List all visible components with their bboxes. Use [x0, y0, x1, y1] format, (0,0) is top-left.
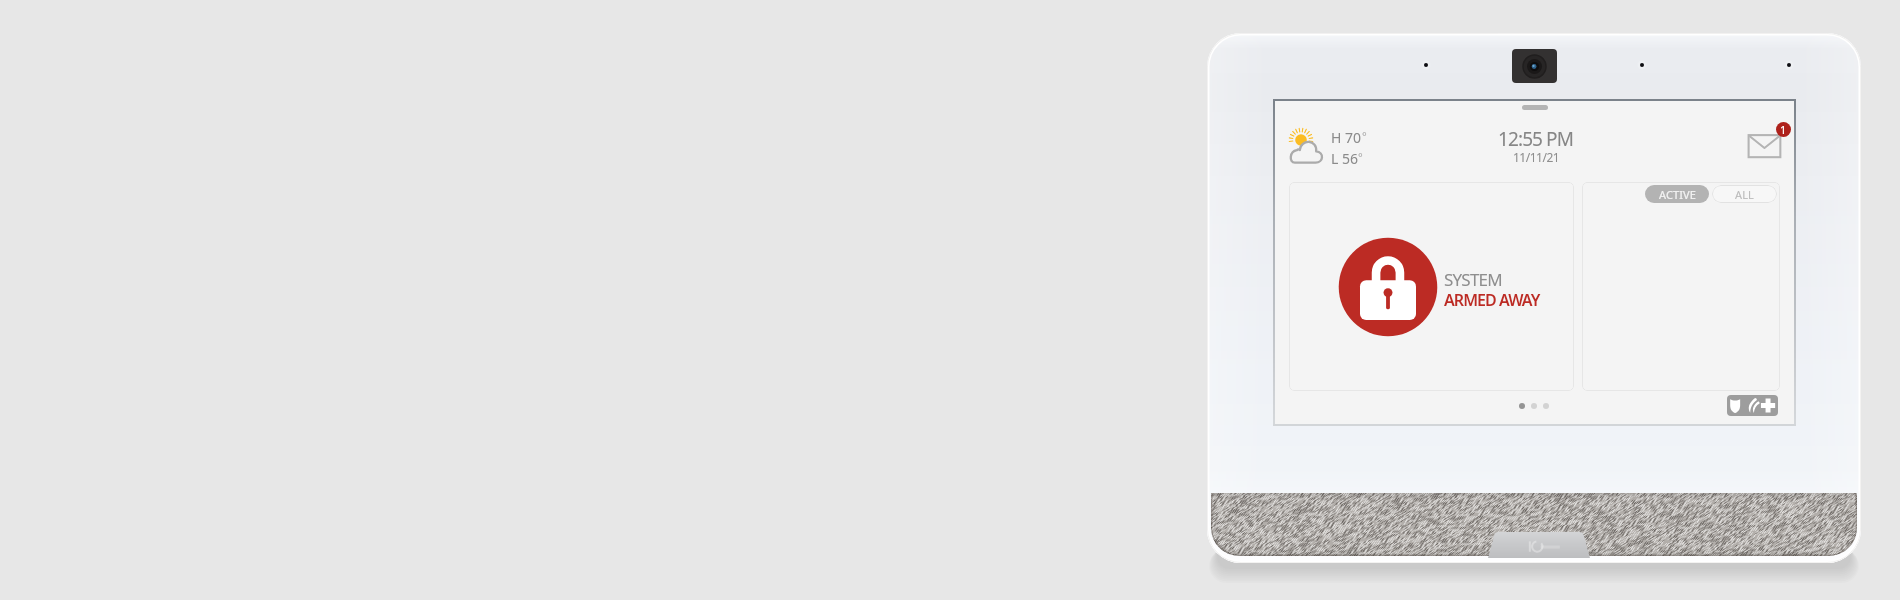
staticText: H 70 — [1331, 128, 1362, 147]
staticText: ° — [1358, 149, 1363, 164]
staticText: L 56 — [1331, 149, 1358, 168]
button[interactable]: Emergency: police, fire, medical — [1727, 395, 1778, 416]
staticText: 12:55 PM — [1498, 126, 1574, 152]
staticText: 11/11/21 — [1513, 149, 1560, 165]
staticText: ° — [1362, 128, 1367, 143]
staticText: SYSTEM — [1444, 268, 1502, 291]
button[interactable]: Page 1 of 3 — [1519, 403, 1549, 409]
staticText: 1 — [1780, 122, 1787, 137]
staticText: ALL — [1735, 187, 1754, 202]
button[interactable]: H 70 — [1282, 124, 1371, 172]
button[interactable]: Sensor list — [1582, 182, 1780, 391]
staticText: ACTIVE — [1659, 187, 1696, 202]
button[interactable]: SYSTEM — [1289, 182, 1574, 391]
staticText: ARMED AWAY — [1444, 289, 1540, 311]
button[interactable]: ACTIVE — [1645, 185, 1709, 203]
button[interactable]: 12:55 PM — [1490, 124, 1582, 170]
button[interactable]: Messages, 1 unread — [1744, 122, 1790, 168]
button[interactable]: ALL — [1712, 185, 1777, 203]
